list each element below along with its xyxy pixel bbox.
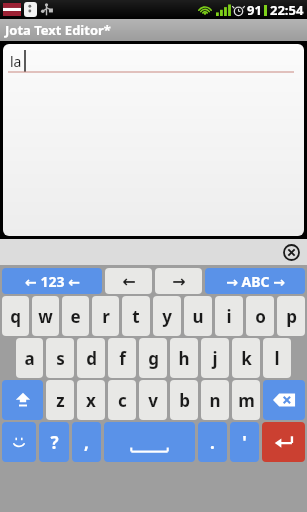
- button[interactable]: j: [201, 338, 229, 378]
- staticText: ': [242, 431, 247, 454]
- staticText: d: [86, 347, 97, 370]
- staticText: o: [255, 305, 266, 328]
- staticText: 91: [247, 1, 262, 19]
- staticText: u: [192, 305, 204, 328]
- button[interactable]: z: [46, 380, 74, 420]
- button[interactable]: u: [184, 296, 212, 336]
- staticText: r: [102, 305, 110, 328]
- button[interactable]: b: [170, 380, 198, 420]
- button[interactable]: l: [263, 338, 291, 378]
- button[interactable]: t: [122, 296, 150, 336]
- button[interactable]: i: [215, 296, 243, 336]
- staticText: z: [56, 389, 65, 412]
- staticText: →: [172, 272, 186, 291]
- staticText: v: [148, 389, 158, 412]
- button[interactable]: Enter: [262, 422, 305, 462]
- staticText: a: [24, 347, 35, 370]
- staticText: w: [38, 305, 53, 328]
- button[interactable]: c: [108, 380, 136, 420]
- staticText: i: [226, 305, 232, 328]
- button[interactable]: Jota Text Editor*: [0, 19, 307, 41]
- button[interactable]: x: [77, 380, 105, 420]
- staticText: la: [10, 52, 22, 71]
- staticText: g: [148, 347, 159, 370]
- button[interactable]: Shift: [2, 380, 43, 420]
- button[interactable]: m: [232, 380, 260, 420]
- button[interactable]: y: [153, 296, 181, 336]
- button[interactable]: n: [201, 380, 229, 420]
- button[interactable]: .: [198, 422, 227, 462]
- staticText: q: [10, 305, 21, 328]
- button[interactable]: Cursor right: [155, 268, 202, 294]
- staticText: m: [238, 389, 255, 412]
- button[interactable]: d: [77, 338, 105, 378]
- button[interactable]: w: [32, 296, 59, 336]
- staticText: ← 123 ←: [25, 272, 80, 291]
- staticText: Jota Text Editor*: [5, 21, 111, 39]
- button[interactable]: Space: [104, 422, 195, 462]
- button[interactable]: q: [2, 296, 29, 336]
- button[interactable]: ,: [72, 422, 101, 462]
- button[interactable]: Emoji: [2, 422, 36, 462]
- staticText: p: [286, 305, 297, 328]
- button[interactable]: ?: [39, 422, 69, 462]
- staticText: l: [274, 347, 280, 370]
- staticText: x: [86, 389, 96, 412]
- button[interactable]: h: [170, 338, 198, 378]
- staticText: ?: [50, 431, 59, 454]
- button[interactable]: la: [3, 44, 304, 236]
- button[interactable]: → ABC →: [205, 268, 305, 294]
- staticText: .: [210, 431, 215, 454]
- staticText: ,: [84, 431, 89, 454]
- button[interactable]: a: [16, 338, 43, 378]
- staticText: e: [70, 305, 81, 328]
- button[interactable]: ← 123 ←: [2, 268, 102, 294]
- staticText: 22:54: [270, 1, 304, 19]
- staticText: t: [132, 305, 140, 328]
- staticText: f: [119, 347, 126, 370]
- button[interactable]: Close keyboard: [280, 241, 302, 263]
- button[interactable]: s: [46, 338, 74, 378]
- button[interactable]: g: [139, 338, 167, 378]
- button[interactable]: Cursor left: [105, 268, 152, 294]
- button[interactable]: v: [139, 380, 167, 420]
- staticText: y: [162, 305, 172, 328]
- button[interactable]: e: [62, 296, 89, 336]
- button[interactable]: k: [232, 338, 260, 378]
- button[interactable]: f: [108, 338, 136, 378]
- staticText: s: [56, 347, 65, 370]
- button[interactable]: Backspace: [263, 380, 305, 420]
- button[interactable]: ': [230, 422, 259, 462]
- staticText: b: [179, 389, 190, 412]
- staticText: h: [178, 347, 190, 370]
- button[interactable]: o: [246, 296, 274, 336]
- staticText: j: [212, 347, 218, 370]
- staticText: → ABC →: [226, 272, 285, 291]
- staticText: c: [118, 389, 127, 412]
- staticText: n: [209, 389, 221, 412]
- button[interactable]: p: [277, 296, 305, 336]
- button[interactable]: r: [92, 296, 119, 336]
- staticText: k: [241, 347, 252, 370]
- staticText: ←: [122, 272, 136, 291]
